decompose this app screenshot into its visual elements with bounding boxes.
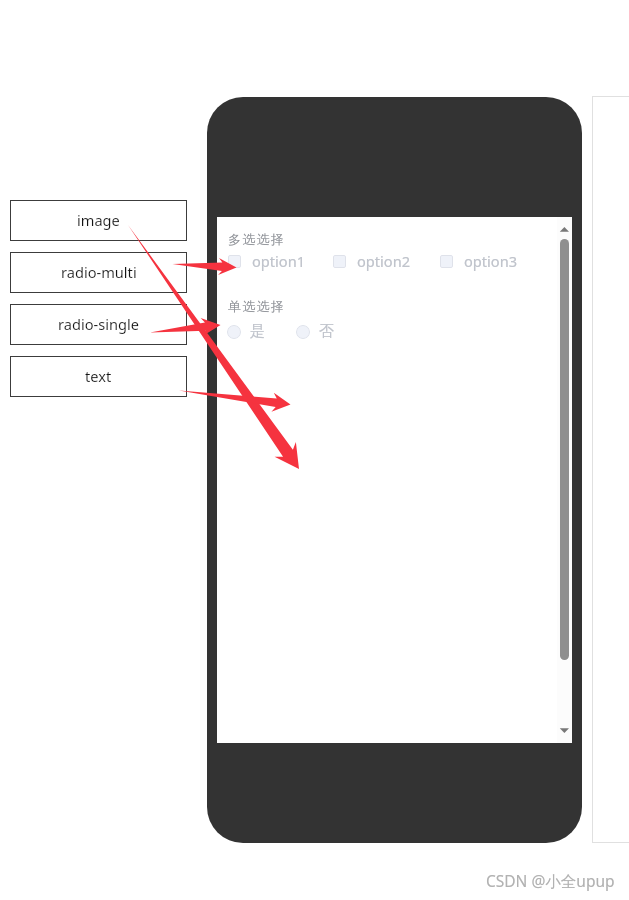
button[interactable]: Scroll thumb [560, 239, 569, 660]
button[interactable]: Scroll down [557, 723, 572, 743]
button[interactable]: option3 [440, 251, 547, 271]
staticText: 多选选择 [228, 231, 285, 247]
button[interactable]: image [10, 200, 187, 241]
button[interactable]: option1 [228, 251, 333, 271]
button[interactable]: text [10, 356, 187, 397]
button[interactable]: Scroll up [557, 217, 572, 237]
button[interactable]: option2 [333, 251, 440, 271]
staticText: option1 [252, 251, 306, 271]
staticText: 单选选择 [228, 298, 285, 314]
staticText: radio-single [58, 314, 139, 334]
staticText: option3 [464, 251, 518, 271]
button[interactable]: radio-multi [10, 252, 187, 293]
button[interactable]: 是 [227, 322, 296, 341]
staticText: radio-multi [61, 262, 137, 282]
button[interactable]: radio-single [10, 304, 187, 345]
button[interactable]: 否 [296, 322, 356, 341]
staticText: option2 [357, 251, 411, 271]
staticText: 是 [250, 322, 265, 341]
staticText: image [77, 210, 120, 230]
staticText: text [85, 366, 112, 386]
staticText: CSDN @小全upup [486, 870, 615, 891]
staticText: 否 [319, 322, 334, 341]
